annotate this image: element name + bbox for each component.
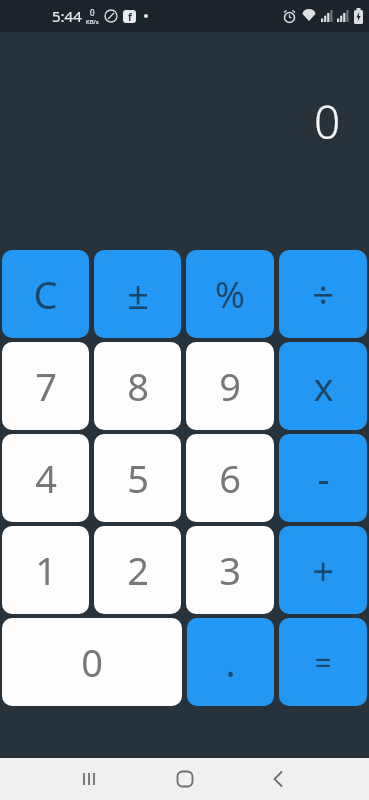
button[interactable]: 4 — [2, 434, 89, 522]
button[interactable] — [267, 768, 289, 790]
staticText: x — [313, 360, 334, 412]
button[interactable]: ± — [94, 250, 181, 338]
staticText: 1 — [35, 544, 57, 596]
button[interactable]: . — [187, 618, 274, 706]
staticText: f — [128, 10, 132, 23]
staticText: 8 — [127, 360, 149, 412]
staticText: 6 — [219, 452, 241, 504]
staticText: 0 — [81, 636, 103, 688]
button[interactable]: ÷ — [279, 250, 367, 338]
button[interactable]: 7 — [2, 342, 89, 430]
button[interactable]: % — [186, 250, 274, 338]
staticText: % — [215, 270, 245, 319]
button[interactable]: - — [279, 434, 367, 522]
button[interactable]: C — [2, 250, 89, 338]
button[interactable]: 2 — [94, 526, 181, 614]
staticText: C — [33, 268, 58, 320]
staticText: 2 — [127, 544, 149, 596]
button[interactable]: 6 — [186, 434, 274, 522]
staticText: ± — [127, 268, 149, 320]
staticText: 0 — [314, 90, 341, 153]
staticText: 5:44 — [52, 6, 82, 26]
staticText: = — [314, 642, 332, 683]
staticText: 3 — [219, 544, 241, 596]
button[interactable]: 1 — [2, 526, 89, 614]
button[interactable]: 3 — [186, 526, 274, 614]
button[interactable]: 5 — [94, 434, 181, 522]
staticText: - — [317, 452, 330, 504]
staticText: KB/s — [86, 18, 99, 26]
button[interactable]: x — [279, 342, 367, 430]
staticText: 7 — [35, 360, 57, 412]
staticText: . — [225, 636, 236, 688]
button[interactable]: + — [279, 526, 367, 614]
staticText: + — [312, 544, 334, 596]
button[interactable] — [174, 768, 196, 790]
staticText: ÷ — [312, 268, 334, 320]
button[interactable]: 9 — [186, 342, 274, 430]
staticText: 4 — [35, 452, 57, 504]
staticText: 9 — [219, 360, 241, 412]
button[interactable]: 0 — [2, 618, 182, 706]
button[interactable]: 8 — [94, 342, 181, 430]
button[interactable]: = — [279, 618, 367, 706]
staticText: 5 — [127, 452, 149, 504]
staticText: 0 — [90, 7, 95, 18]
button[interactable] — [78, 768, 100, 790]
